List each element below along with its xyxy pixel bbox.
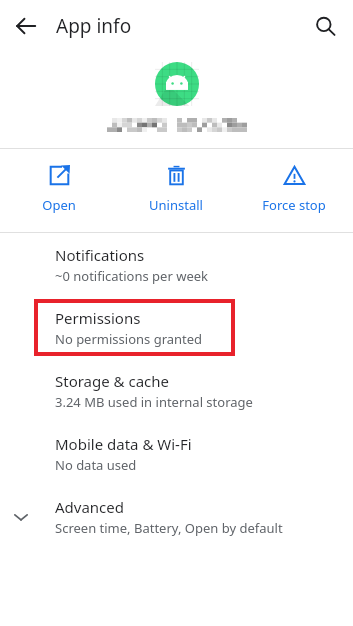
- button[interactable]: Mobile data & Wi-Fi: [0, 422, 353, 485]
- staticText: Notifications: [55, 245, 145, 265]
- button[interactable]: Force stop: [235, 149, 353, 232]
- staticText: No permissions granted: [55, 330, 203, 348]
- button[interactable]: Uninstall: [117, 149, 235, 232]
- staticText: Advanced: [55, 497, 125, 517]
- staticText: Storage & cache: [55, 371, 170, 391]
- button[interactable]: Advanced: [0, 485, 353, 548]
- staticText: Mobile data & Wi-Fi: [55, 434, 192, 454]
- button[interactable]: Notifications: [0, 233, 353, 296]
- button[interactable]: Storage & cache: [0, 359, 353, 422]
- button[interactable]: Open: [0, 149, 117, 232]
- staticText: No data used: [55, 456, 137, 474]
- button[interactable]: Search: [305, 6, 345, 46]
- staticText: Open: [42, 196, 76, 214]
- staticText: 3.24 MB used in internal storage: [55, 393, 253, 411]
- staticText: Uninstall: [149, 196, 203, 214]
- staticText: Screen time, Battery, Open by default: [55, 519, 283, 537]
- button[interactable]: Permissions: [0, 296, 353, 359]
- button[interactable]: Back: [6, 6, 46, 46]
- staticText: Force stop: [262, 196, 326, 214]
- staticText: Permissions: [55, 308, 141, 328]
- staticText: ~0 notifications per week: [55, 267, 209, 285]
- staticText: App info: [56, 13, 132, 39]
